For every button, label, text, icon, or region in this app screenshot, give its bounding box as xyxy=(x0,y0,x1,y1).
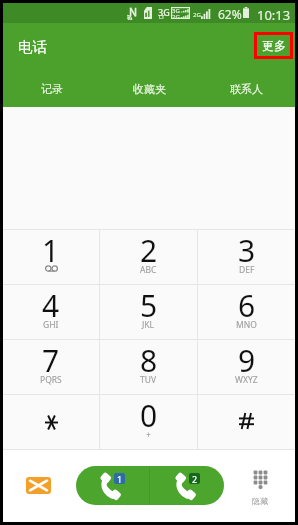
button[interactable]: 3 xyxy=(198,230,295,284)
button[interactable]: 0 xyxy=(100,395,197,449)
button[interactable]: 4 xyxy=(3,285,99,339)
staticText: TUV xyxy=(140,374,157,386)
button[interactable]: Call with SIM 2 xyxy=(150,466,224,505)
staticText: 6 xyxy=(238,285,256,326)
staticText: 2 xyxy=(140,230,158,271)
staticText: 2G xyxy=(193,11,201,19)
staticText: 4 xyxy=(42,285,60,326)
staticText: GHI xyxy=(43,319,59,331)
staticText: 收藏夹 xyxy=(133,82,166,96)
staticText: 9 xyxy=(238,340,256,381)
staticText: 3G xyxy=(158,6,170,18)
button[interactable]: 6 xyxy=(198,285,295,339)
button[interactable]: 1 xyxy=(3,230,99,284)
button[interactable]: 收藏夹 xyxy=(101,70,198,107)
staticText: 5 xyxy=(140,285,158,326)
staticText: 62% xyxy=(218,6,242,22)
button[interactable]: Send message xyxy=(26,477,51,494)
button[interactable]: 7 xyxy=(3,340,99,394)
staticText: WXYZ xyxy=(235,374,258,386)
button[interactable] xyxy=(198,395,295,449)
staticText: 3 xyxy=(238,230,256,271)
staticText: ABC xyxy=(140,264,157,276)
staticText: PQRS xyxy=(40,374,62,386)
staticText: 联系人 xyxy=(230,82,263,96)
button[interactable]: 2 xyxy=(100,230,197,284)
button[interactable]: 记录 xyxy=(3,70,101,107)
staticText: 2 xyxy=(192,473,198,484)
staticText: 7 xyxy=(42,340,60,381)
staticText: 2G xyxy=(172,13,180,21)
staticText: JKL xyxy=(142,319,155,331)
staticText: 8 xyxy=(140,340,158,381)
staticText: LT xyxy=(159,14,165,21)
staticText: 更多 xyxy=(262,38,286,53)
staticText: 1 xyxy=(117,473,123,484)
staticText: + xyxy=(146,429,151,441)
button[interactable]: 更多 xyxy=(254,32,293,59)
button[interactable]: 9 xyxy=(198,340,295,394)
button[interactable] xyxy=(3,395,99,449)
staticText: 10:13 xyxy=(257,6,291,24)
button[interactable]: 5 xyxy=(100,285,197,339)
staticText: 3G xyxy=(172,7,180,15)
staticText: 1 xyxy=(42,230,60,271)
button[interactable]: 联系人 xyxy=(198,70,295,107)
staticText: DEF xyxy=(239,264,255,276)
staticText: 0 xyxy=(140,395,158,436)
staticText: 隐藏 xyxy=(252,496,268,506)
staticText: 电话 xyxy=(18,38,47,56)
button[interactable]: Call with SIM 1 xyxy=(76,466,149,505)
button[interactable]: 隐藏 xyxy=(244,470,276,506)
staticText: MNO xyxy=(236,319,257,331)
button[interactable]: 8 xyxy=(100,340,197,394)
staticText: 记录 xyxy=(41,82,63,96)
